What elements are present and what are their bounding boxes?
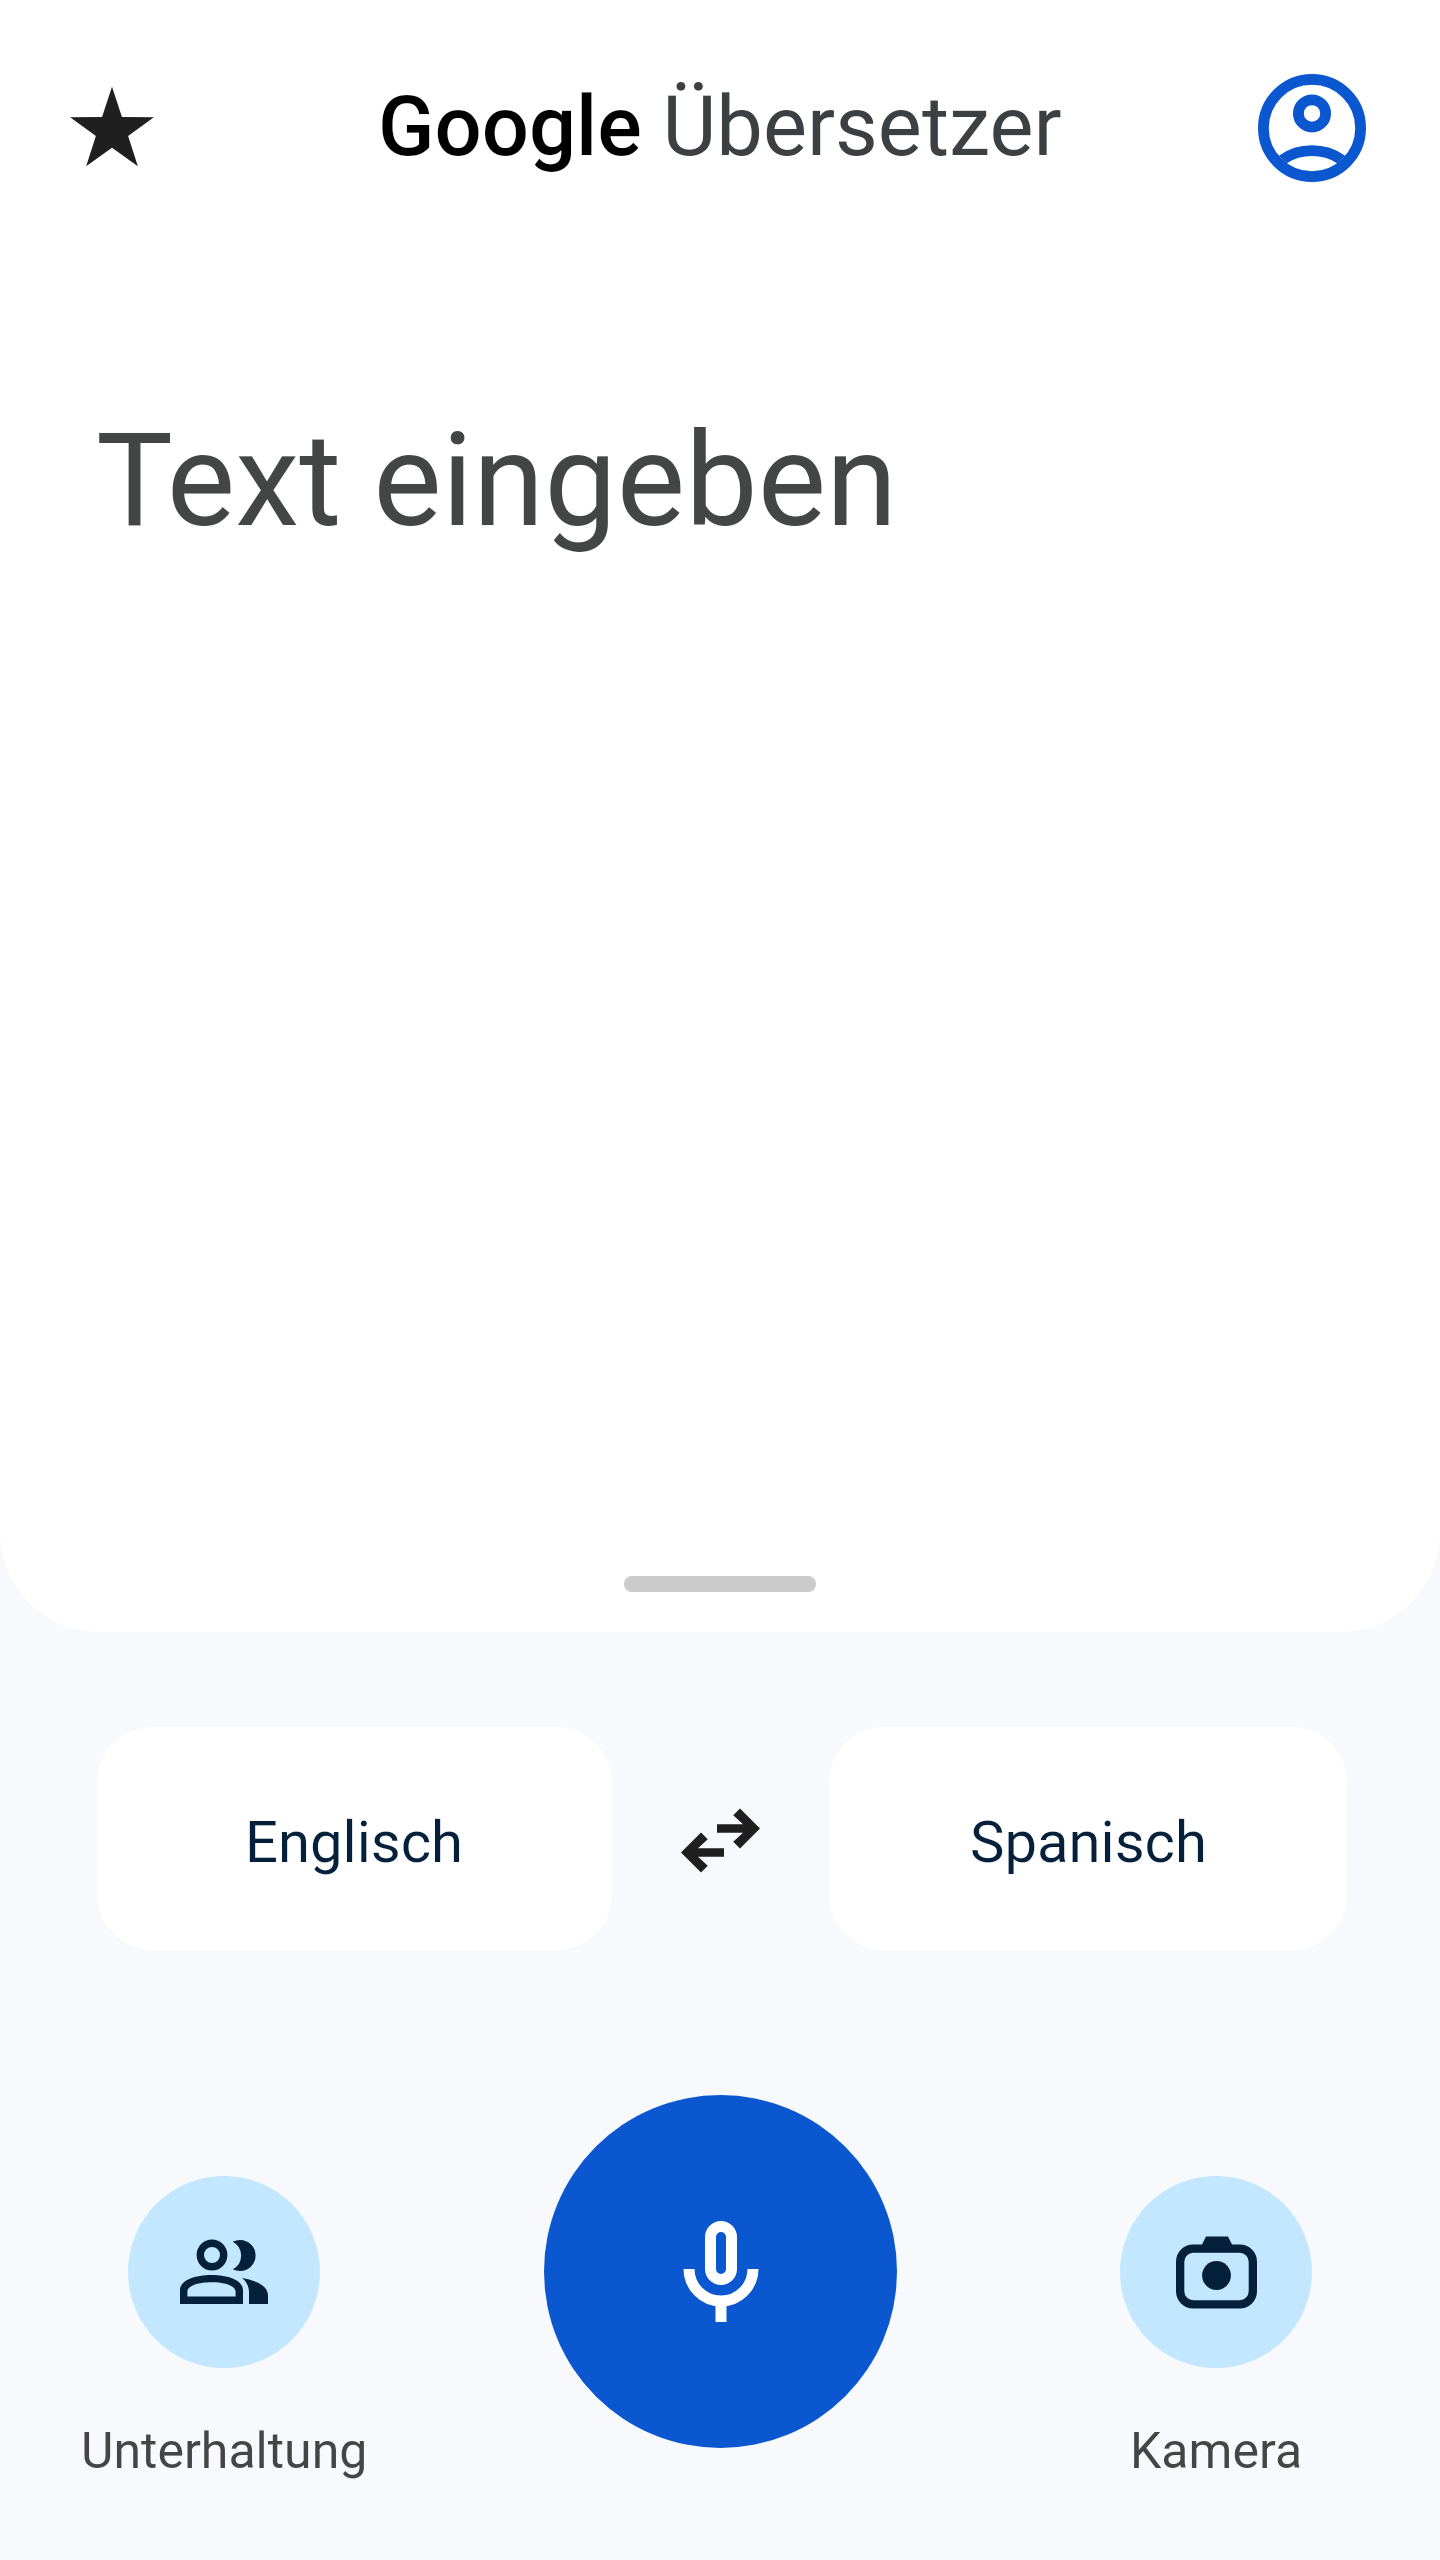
button[interactable]: Englisch [97,1727,612,1950]
button[interactable]: Saved translations [48,65,176,193]
staticText: Unterhaltung [81,2422,368,2481]
button[interactable]: Kamera [1056,2176,1376,2506]
button[interactable]: Spanisch [829,1727,1347,1950]
staticText: Google Übersetzer [378,78,1062,175]
staticText: Kamera [1130,2422,1303,2481]
button[interactable]: Account [1252,68,1372,188]
button[interactable]: Text eingeben [96,405,898,556]
button[interactable]: Speak to translate [544,2095,897,2448]
button[interactable]: Unterhaltung [64,2176,384,2506]
staticText: Englisch [245,1808,464,1876]
staticText: Spanisch [970,1808,1207,1876]
button[interactable]: Swap languages [648,1768,792,1912]
